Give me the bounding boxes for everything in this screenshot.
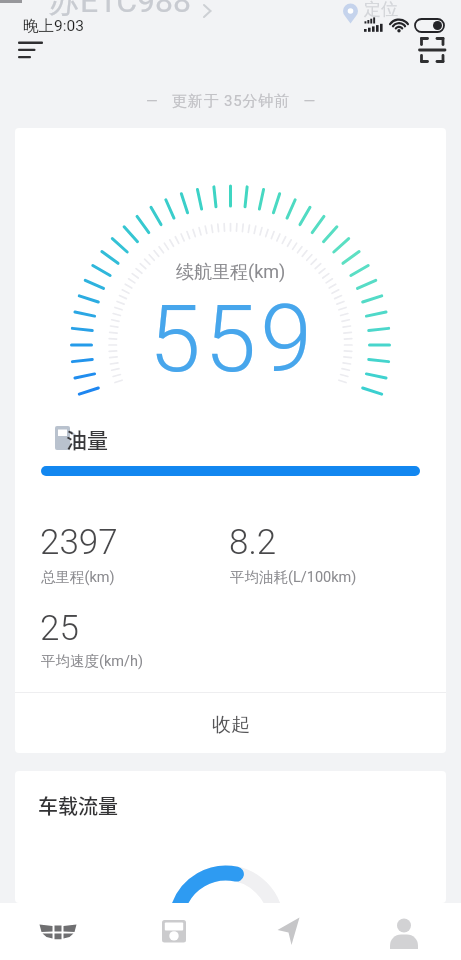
staticText: 定位 xyxy=(364,0,398,20)
staticText: 油量 xyxy=(66,424,108,454)
staticText: 收起 xyxy=(212,713,250,737)
button[interactable] xyxy=(0,903,116,960)
staticText: 559 xyxy=(149,285,316,394)
staticText: 平均速度(km/h) xyxy=(41,652,144,670)
staticText: 8.2 xyxy=(229,522,277,563)
button[interactable] xyxy=(410,30,454,70)
button[interactable] xyxy=(231,903,346,960)
staticText: 2397 xyxy=(40,522,118,563)
staticText: 平均油耗(L/100km) xyxy=(230,568,357,586)
button[interactable] xyxy=(8,34,54,66)
staticText: 25 xyxy=(40,608,79,649)
staticText: — 更新于 35分钟前 — xyxy=(146,92,316,111)
staticText: 苏E1C988 xyxy=(48,0,191,21)
staticText: 晚上9:03 xyxy=(23,16,84,36)
button[interactable] xyxy=(346,903,461,960)
button[interactable] xyxy=(116,903,231,960)
staticText: 续航里程(km) xyxy=(176,261,286,284)
staticText: 总里程(km) xyxy=(41,568,115,586)
staticText: 车载流量 xyxy=(38,791,118,820)
button[interactable]: 收起 xyxy=(15,695,446,753)
